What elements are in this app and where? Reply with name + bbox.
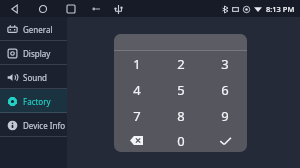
staticText: 5 <box>177 81 185 99</box>
staticText: General <box>23 24 53 35</box>
button[interactable]: 5 <box>159 77 203 103</box>
button[interactable]: General <box>0 17 67 41</box>
button[interactable]: Confirm <box>203 129 247 152</box>
button[interactable]: 0 <box>159 129 203 152</box>
button[interactable]: 2 <box>159 51 203 77</box>
button[interactable]: Sound <box>0 65 67 89</box>
staticText: 1 <box>133 55 141 73</box>
staticText: 0 <box>177 132 185 150</box>
button[interactable]: Device Info <box>0 113 67 137</box>
staticText: Factory <box>23 96 51 107</box>
staticText: 7 <box>133 107 141 125</box>
staticText: 3 <box>221 55 229 73</box>
staticText: 6 <box>221 81 229 99</box>
button[interactable]: 7 <box>114 103 159 129</box>
button[interactable]: Display <box>0 41 67 65</box>
staticText: 8 <box>177 107 185 125</box>
button[interactable]: Home <box>36 2 50 16</box>
button[interactable]: 3 <box>203 51 247 77</box>
button[interactable]: Recents <box>64 2 78 16</box>
button[interactable]: 6 <box>203 77 247 103</box>
button[interactable]: 4 <box>114 77 159 103</box>
staticText: 2 <box>177 55 185 73</box>
staticText: Sound <box>23 72 48 83</box>
staticText: Display <box>23 48 51 59</box>
staticText: 8:13 PM <box>266 4 295 14</box>
button[interactable]: 9 <box>203 103 247 129</box>
button[interactable]: 8 <box>159 103 203 129</box>
staticText: 4 <box>133 81 141 99</box>
button[interactable]: Backspace <box>114 129 159 152</box>
staticText: Device Info <box>23 120 65 131</box>
button[interactable]: Back <box>8 2 22 16</box>
button[interactable]: Factory <box>0 89 67 113</box>
staticText: 9 <box>221 107 229 125</box>
button[interactable] <box>114 34 247 50</box>
button[interactable]: 1 <box>114 51 159 77</box>
